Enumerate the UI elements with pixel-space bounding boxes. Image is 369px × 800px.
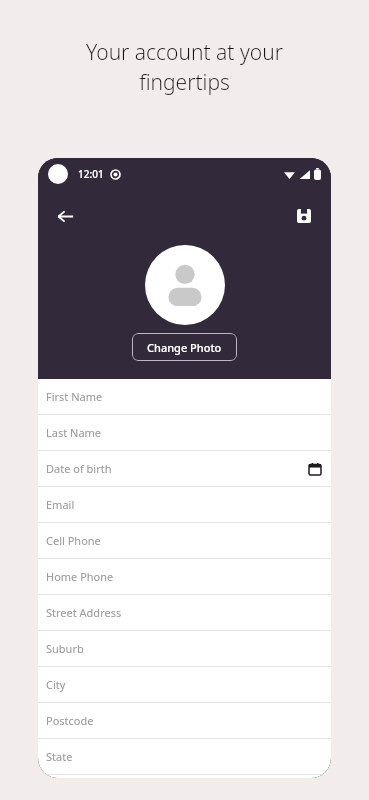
button[interactable]: Postcode: [38, 703, 331, 739]
button[interactable]: Date of birth: [38, 451, 331, 487]
button[interactable]: First Name: [38, 379, 331, 415]
button[interactable]: Email: [38, 487, 331, 523]
button[interactable]: Cell Phone: [38, 523, 331, 559]
staticText: Email: [46, 497, 75, 512]
button[interactable]: Street Address: [38, 595, 331, 631]
button[interactable]: Last Name: [38, 415, 331, 451]
staticText: State: [46, 749, 73, 764]
staticText: City: [46, 677, 66, 692]
button[interactable]: Change Photo: [132, 333, 237, 361]
staticText: Last Name: [46, 425, 102, 440]
button[interactable]: City: [38, 667, 331, 703]
staticText: Suburb: [46, 641, 84, 656]
staticText: Street Address: [46, 605, 122, 620]
button[interactable]: Back: [50, 201, 80, 231]
staticText: Postcode: [46, 713, 94, 728]
staticText: Cell Phone: [46, 533, 101, 548]
staticText: Date of birth: [46, 461, 112, 476]
staticText: Home Phone: [46, 569, 114, 584]
button[interactable]: State: [38, 739, 331, 775]
staticText: Change Photo: [147, 340, 222, 355]
staticText: 12:01: [78, 167, 104, 181]
staticText: Your account at your fingertips: [86, 38, 283, 96]
button[interactable]: Save: [289, 201, 319, 231]
button[interactable]: Suburb: [38, 631, 331, 667]
staticText: First Name: [46, 389, 103, 404]
button[interactable]: Home Phone: [38, 559, 331, 595]
